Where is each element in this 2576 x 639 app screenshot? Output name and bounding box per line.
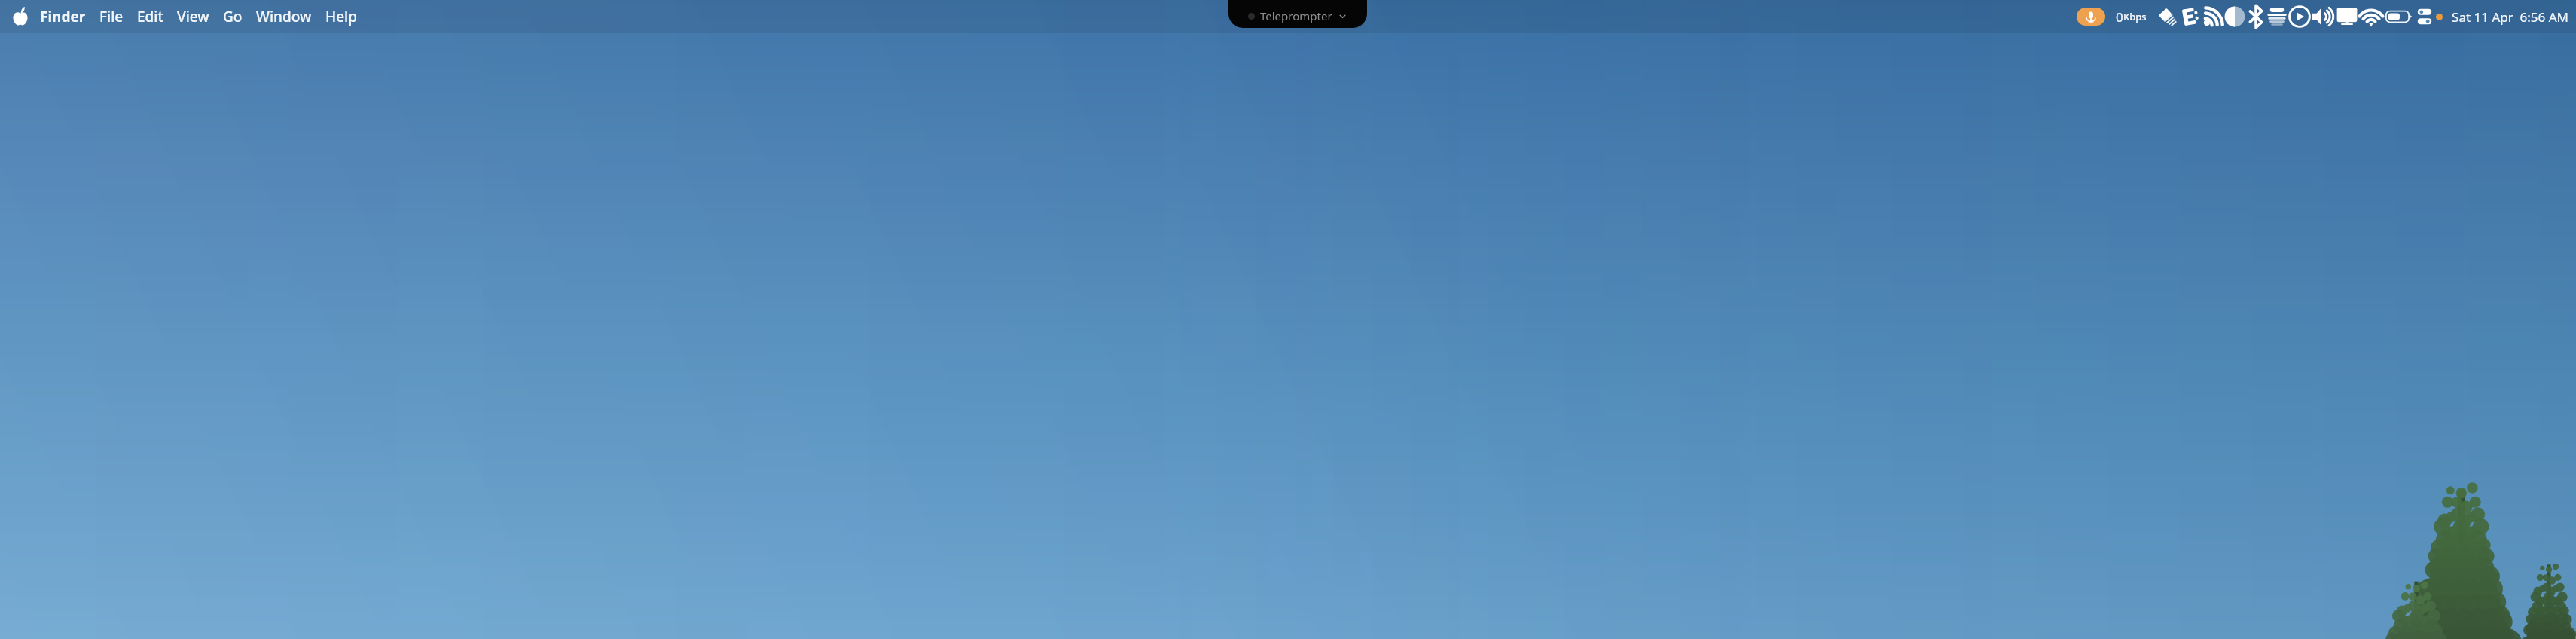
staticText: File	[99, 7, 124, 26]
button[interactable]: Bluetooth	[2246, 0, 2266, 33]
button[interactable]: Finder	[33, 0, 93, 33]
button[interactable]: Scribble	[2156, 0, 2178, 33]
button[interactable]: Edit	[130, 0, 170, 33]
staticText: Sat 11 Apr 6:56 AM	[2452, 8, 2568, 26]
button[interactable]: Screen mirroring	[2335, 0, 2359, 33]
button[interactable]: AirPlay receiver	[2201, 0, 2223, 33]
button[interactable]: Now playing	[2288, 0, 2311, 33]
staticText: Teleprompter	[1260, 8, 1332, 23]
button[interactable]: Microphone in use	[2077, 8, 2105, 26]
button[interactable]: Control Center	[2415, 0, 2443, 33]
button[interactable]: Volume	[2311, 0, 2335, 33]
button[interactable]: Sat 11 Apr 6:56 AM	[2452, 0, 2568, 33]
button[interactable]: Window manager	[2266, 0, 2288, 33]
button[interactable]: Window	[249, 0, 319, 33]
staticText: Kbps	[2123, 10, 2147, 23]
staticText: Help	[325, 7, 358, 26]
button[interactable]: Display contrast	[2223, 0, 2246, 33]
button[interactable]: Wi-Fi	[2359, 0, 2383, 33]
button[interactable]: File	[93, 0, 130, 33]
staticText: Finder	[40, 7, 86, 26]
button[interactable]: Help	[319, 0, 365, 33]
staticText: 0	[2116, 8, 2123, 26]
staticText: Go	[223, 7, 243, 26]
button[interactable]: Apple menu	[8, 0, 33, 33]
button[interactable]: Elgato	[2178, 0, 2201, 33]
button[interactable]: Go	[216, 0, 249, 33]
button[interactable]: View	[170, 0, 216, 33]
button[interactable]: 0	[2116, 0, 2147, 33]
staticText: Edit	[137, 7, 163, 26]
staticText: View	[177, 7, 209, 26]
button[interactable]: Teleprompter	[1228, 0, 1367, 28]
button[interactable]: Battery	[2383, 0, 2412, 33]
staticText: Window	[256, 7, 312, 26]
